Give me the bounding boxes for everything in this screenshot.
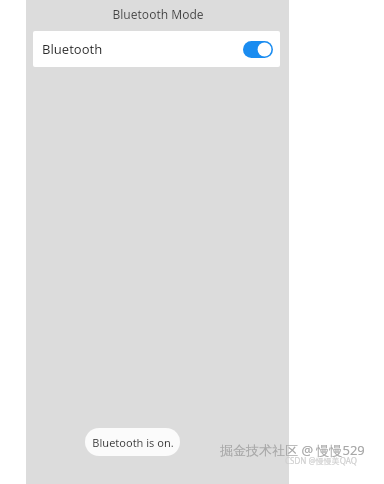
- staticText: CSDN @慢慢美QAQ: [285, 455, 357, 466]
- staticText: 掘金技术社区 @ 慢慢529: [220, 441, 365, 459]
- staticText: Bluetooth Mode: [112, 6, 204, 22]
- button[interactable]: Bluetooth: [33, 31, 280, 67]
- staticText: Bluetooth is on.: [92, 435, 174, 450]
- button[interactable]: Bluetooth toggle, on: [243, 41, 273, 58]
- staticText: Bluetooth: [42, 40, 103, 58]
